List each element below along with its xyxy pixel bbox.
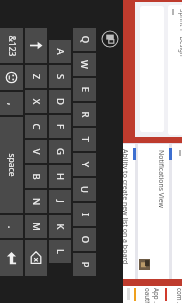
staticText: W <box>78 60 91 69</box>
staticText: V <box>29 148 42 154</box>
staticText: C <box>30 123 43 130</box>
staticText: N <box>29 197 42 205</box>
button[interactable]: &123 <box>0 28 23 63</box>
button[interactable]: K <box>49 215 71 238</box>
staticText: U <box>78 186 91 193</box>
button[interactable]: Z <box>25 65 47 88</box>
button[interactable] <box>139 259 150 270</box>
button[interactable]: O <box>73 228 96 251</box>
staticText: G <box>54 148 67 155</box>
staticText: B <box>30 173 43 180</box>
staticText: E <box>78 86 91 92</box>
button[interactable]: . <box>0 215 23 238</box>
button[interactable]: H <box>49 165 71 188</box>
staticText: Notifications View <box>157 150 166 208</box>
button[interactable]: G <box>49 140 71 163</box>
staticText: Z <box>29 73 42 79</box>
button[interactable]: Hide keyboard <box>101 30 119 48</box>
staticText: T <box>78 136 91 142</box>
button[interactable]: X <box>25 90 47 113</box>
staticText: R <box>78 111 91 117</box>
button[interactable]: E <box>73 78 96 101</box>
button[interactable]: D <box>49 90 71 113</box>
button[interactable]: N <box>25 190 47 213</box>
staticText: oauth <box>144 288 152 303</box>
staticText: &123 <box>5 35 17 56</box>
staticText: P <box>78 261 91 267</box>
button[interactable]: T <box>73 128 96 151</box>
staticText: App ... <box>153 288 161 303</box>
staticText: A <box>54 48 67 55</box>
button[interactable]: R <box>73 103 96 126</box>
button[interactable]: Enter <box>25 28 47 63</box>
staticText: J <box>54 200 67 203</box>
staticText: O <box>78 235 91 243</box>
button[interactable]: U <box>73 178 96 201</box>
button[interactable]: Backspace <box>25 240 47 276</box>
staticText: H <box>53 172 66 180</box>
button[interactable]: W <box>73 53 96 76</box>
button[interactable]: A <box>49 40 71 63</box>
button[interactable] <box>168 5 182 135</box>
staticText: K <box>53 223 66 229</box>
button[interactable]: B <box>25 165 47 188</box>
staticText: Ability to create new list on a board <box>120 149 130 265</box>
staticText: F <box>54 124 67 129</box>
button[interactable]: Emoji <box>0 65 23 90</box>
staticText: Q <box>78 35 91 43</box>
button[interactable]: J <box>49 190 71 213</box>
button[interactable]: L <box>49 240 71 263</box>
staticText: Sprint 1 · Design <box>179 9 182 57</box>
button[interactable]: V <box>25 140 47 163</box>
staticText: com ... <box>176 288 182 303</box>
staticText: . <box>4 225 18 228</box>
button[interactable]: Q <box>73 28 96 51</box>
button[interactable]: P <box>73 253 96 276</box>
button[interactable]: S <box>49 65 71 88</box>
button[interactable]: F <box>49 115 71 138</box>
staticText: D <box>54 98 67 105</box>
staticText: X <box>29 98 42 104</box>
staticText: Y <box>78 161 91 167</box>
button[interactable]: space <box>0 117 23 213</box>
staticText: I <box>78 212 91 216</box>
staticText: S <box>53 73 66 79</box>
staticText: , <box>4 102 18 105</box>
button[interactable]: Y <box>73 153 96 176</box>
staticText: L <box>54 249 67 254</box>
button[interactable]: , <box>0 92 23 115</box>
button[interactable]: M <box>25 215 47 238</box>
staticText: M <box>30 222 43 231</box>
staticText: space <box>5 153 17 176</box>
button[interactable]: I <box>73 203 96 226</box>
button[interactable]: C <box>25 115 47 138</box>
button[interactable]: Shift <box>0 240 23 276</box>
